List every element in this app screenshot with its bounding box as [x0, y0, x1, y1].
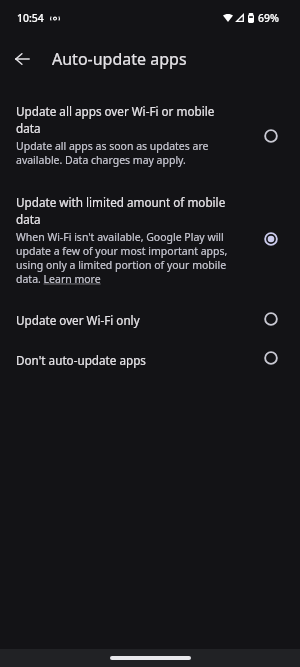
staticText: Update all apps over Wi-Fi or mobile dat… — [16, 103, 233, 136]
staticText: Auto-update apps — [52, 48, 187, 70]
staticText: Update with limited amount of mobile dat… — [16, 194, 233, 227]
button[interactable]: Update all apps over Wi-Fi or mobile dat… — [0, 81, 300, 167]
staticText: Don't auto-update apps — [16, 352, 146, 368]
button[interactable]: Update with limited amount of mobile dat… — [0, 167, 300, 286]
staticText: Update over Wi-Fi only — [16, 312, 140, 328]
button[interactable]: Back — [6, 43, 38, 75]
button[interactable]: Don't auto-update apps — [0, 336, 300, 376]
staticText: When Wi-Fi isn't available, Google Play … — [16, 230, 233, 286]
staticText: 69% — [258, 11, 279, 25]
staticText: Update all apps as soon as updates are a… — [16, 139, 233, 167]
button[interactable]: Update over Wi-Fi only — [0, 286, 300, 336]
staticText: 10:54 — [17, 11, 44, 25]
